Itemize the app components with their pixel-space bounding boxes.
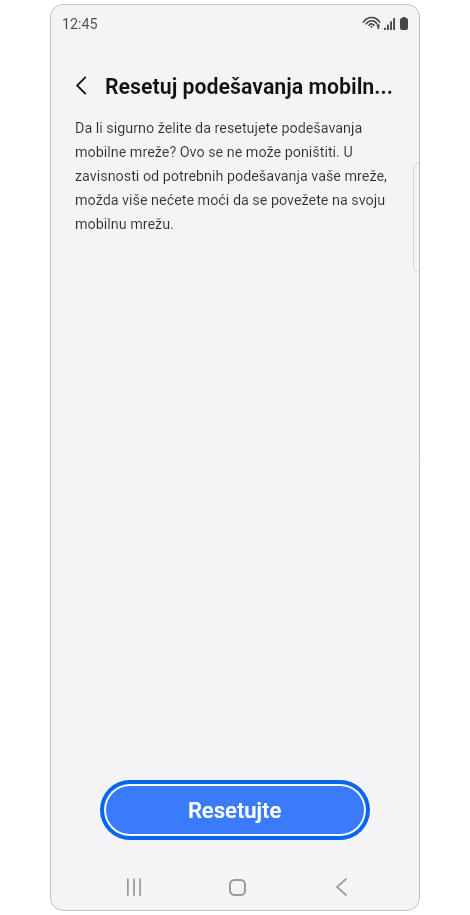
- button[interactable]: Resetujte: [106, 786, 364, 834]
- staticText: Resetujte: [188, 797, 282, 823]
- staticText: 12:45: [62, 16, 98, 33]
- staticText: Resetuj podešavanja mobiln...: [105, 74, 393, 99]
- button[interactable]: Recent apps: [112, 865, 156, 909]
- button[interactable]: Home: [215, 865, 259, 909]
- button[interactable]: Back: [67, 71, 95, 99]
- button[interactable]: Back: [319, 865, 363, 909]
- staticText: Da li sigurno želite da resetujete podeš…: [75, 120, 387, 233]
